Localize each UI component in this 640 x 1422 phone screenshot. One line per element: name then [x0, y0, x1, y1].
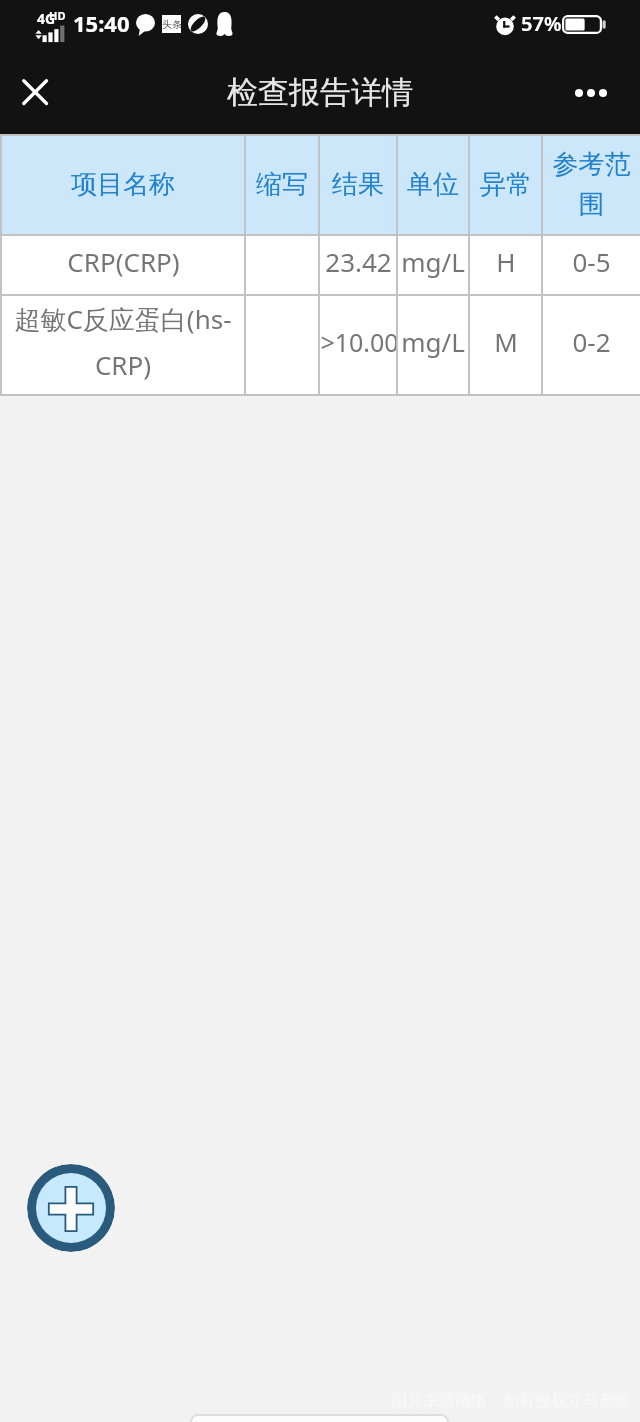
staticText: 0-2 — [572, 317, 611, 361]
staticText: 0-5 — [572, 237, 611, 281]
button[interactable]: More options — [559, 52, 623, 134]
staticText: M — [494, 317, 518, 361]
staticText: 23.42 — [325, 237, 392, 281]
button[interactable]: Add — [27, 1164, 115, 1252]
staticText: 4G — [37, 9, 56, 28]
staticText: 缩写 — [256, 163, 308, 203]
staticText: H — [496, 237, 516, 281]
staticText: 检查报告详情 — [227, 73, 413, 112]
staticText: CRP(CRP) — [67, 237, 180, 281]
staticText: HD — [49, 8, 66, 23]
staticText: 项目名称 — [71, 163, 175, 203]
staticText: 参考范围 — [543, 143, 640, 223]
button[interactable]: 超敏C反应蛋白(hs-CRP) — [0, 296, 640, 394]
staticText: >10.00 — [320, 317, 396, 361]
staticText: 结果 — [332, 163, 384, 203]
staticText: 单位 — [407, 163, 459, 203]
staticText: 超敏C反应蛋白(hs-CRP) — [2, 294, 244, 384]
staticText: 57% — [521, 10, 562, 37]
staticText: 头条 — [162, 18, 181, 31]
button[interactable]: CRP(CRP) — [0, 236, 640, 294]
staticText: 15:40 — [73, 8, 130, 38]
button[interactable]: Close — [3, 52, 67, 134]
staticText: mg/L — [401, 237, 465, 281]
staticText: 异常 — [480, 163, 532, 203]
staticText: mg/L — [401, 317, 465, 361]
